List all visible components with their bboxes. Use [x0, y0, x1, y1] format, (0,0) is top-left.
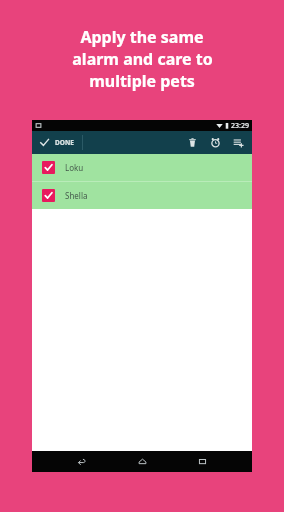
staticText: 23:29: [231, 121, 249, 131]
button[interactable]: Loku: [32, 154, 252, 181]
staticText: multiple pets: [89, 70, 195, 92]
staticText: alarm and care to: [72, 48, 213, 70]
button[interactable]: Delete: [181, 131, 204, 154]
button[interactable]: Recent apps: [192, 451, 213, 472]
button[interactable]: DONE: [32, 131, 82, 154]
button[interactable]: Home: [132, 451, 153, 472]
button[interactable]: Shella: [32, 182, 252, 209]
staticText: Apply the same: [80, 26, 204, 48]
staticText: Loku: [65, 162, 84, 173]
staticText: DONE: [55, 138, 74, 147]
button[interactable]: Set alarm: [204, 131, 227, 154]
staticText: Shella: [65, 190, 88, 201]
button[interactable]: Back: [71, 451, 92, 472]
button[interactable]: Add pet: [227, 131, 252, 154]
